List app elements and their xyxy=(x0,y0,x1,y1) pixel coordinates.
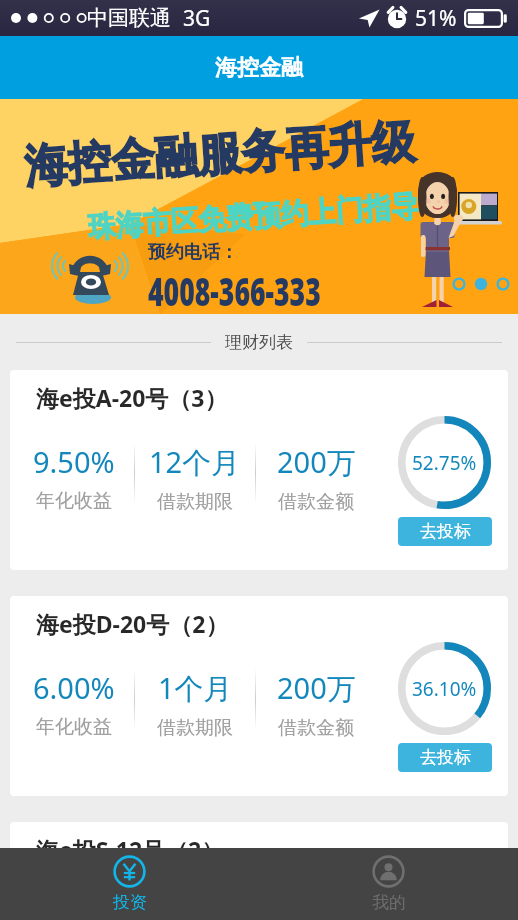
staticText: 借款期限 xyxy=(157,716,233,740)
staticText: 3G xyxy=(183,4,211,33)
staticText: 9.50% xyxy=(33,442,115,481)
staticText: 4008-366-333 xyxy=(148,265,321,317)
staticText: 海e投D-20号（2） xyxy=(36,608,229,639)
button[interactable]: 去投标 xyxy=(398,743,492,772)
staticText: 200万 xyxy=(277,668,356,708)
staticText: 年化收益 xyxy=(36,715,112,739)
button[interactable]: 我的 xyxy=(259,848,518,920)
staticText: 1个月 xyxy=(158,668,233,708)
staticText: 7.00% xyxy=(33,894,115,920)
staticText: 我的 xyxy=(372,892,406,913)
button[interactable]: 去投标 xyxy=(398,517,492,546)
staticText: 去投标 xyxy=(420,747,471,768)
staticText: 200万 xyxy=(277,442,356,482)
staticText: 年化收益 xyxy=(36,489,112,513)
staticText: 海控金融服务再升级 xyxy=(22,113,417,197)
staticText: 36.10% xyxy=(412,676,477,702)
button[interactable]: 海控金融服务再升级 xyxy=(0,99,518,314)
staticText: 借款金额 xyxy=(278,716,354,740)
staticText: 海控金融 xyxy=(215,54,303,82)
staticText: 借款期限 xyxy=(157,490,233,514)
button[interactable]: 海e投S-12号（2） xyxy=(10,822,508,920)
staticText: 海e投S-12号（2） xyxy=(36,834,225,865)
button[interactable]: 投资 xyxy=(0,848,259,920)
button[interactable]: 海e投A-20号（3） xyxy=(10,370,508,570)
staticText: 投资 xyxy=(113,892,147,913)
staticText: 海e投A-20号（3） xyxy=(36,382,228,413)
staticText: 51% xyxy=(415,4,457,33)
staticText: 预约电话： xyxy=(148,241,238,264)
staticText: 6.00% xyxy=(33,668,115,707)
button[interactable]: 海e投D-20号（2） xyxy=(10,596,508,796)
staticText: 珠海市区免费预约上门指导 xyxy=(87,188,419,246)
staticText: 理财列表 xyxy=(225,332,293,353)
staticText: 去投标 xyxy=(420,521,471,542)
staticText: 借款金额 xyxy=(278,490,354,514)
staticText: 52.75% xyxy=(412,450,477,476)
staticText: 12个月 xyxy=(149,442,241,482)
staticText: 中国联通 xyxy=(87,5,171,31)
